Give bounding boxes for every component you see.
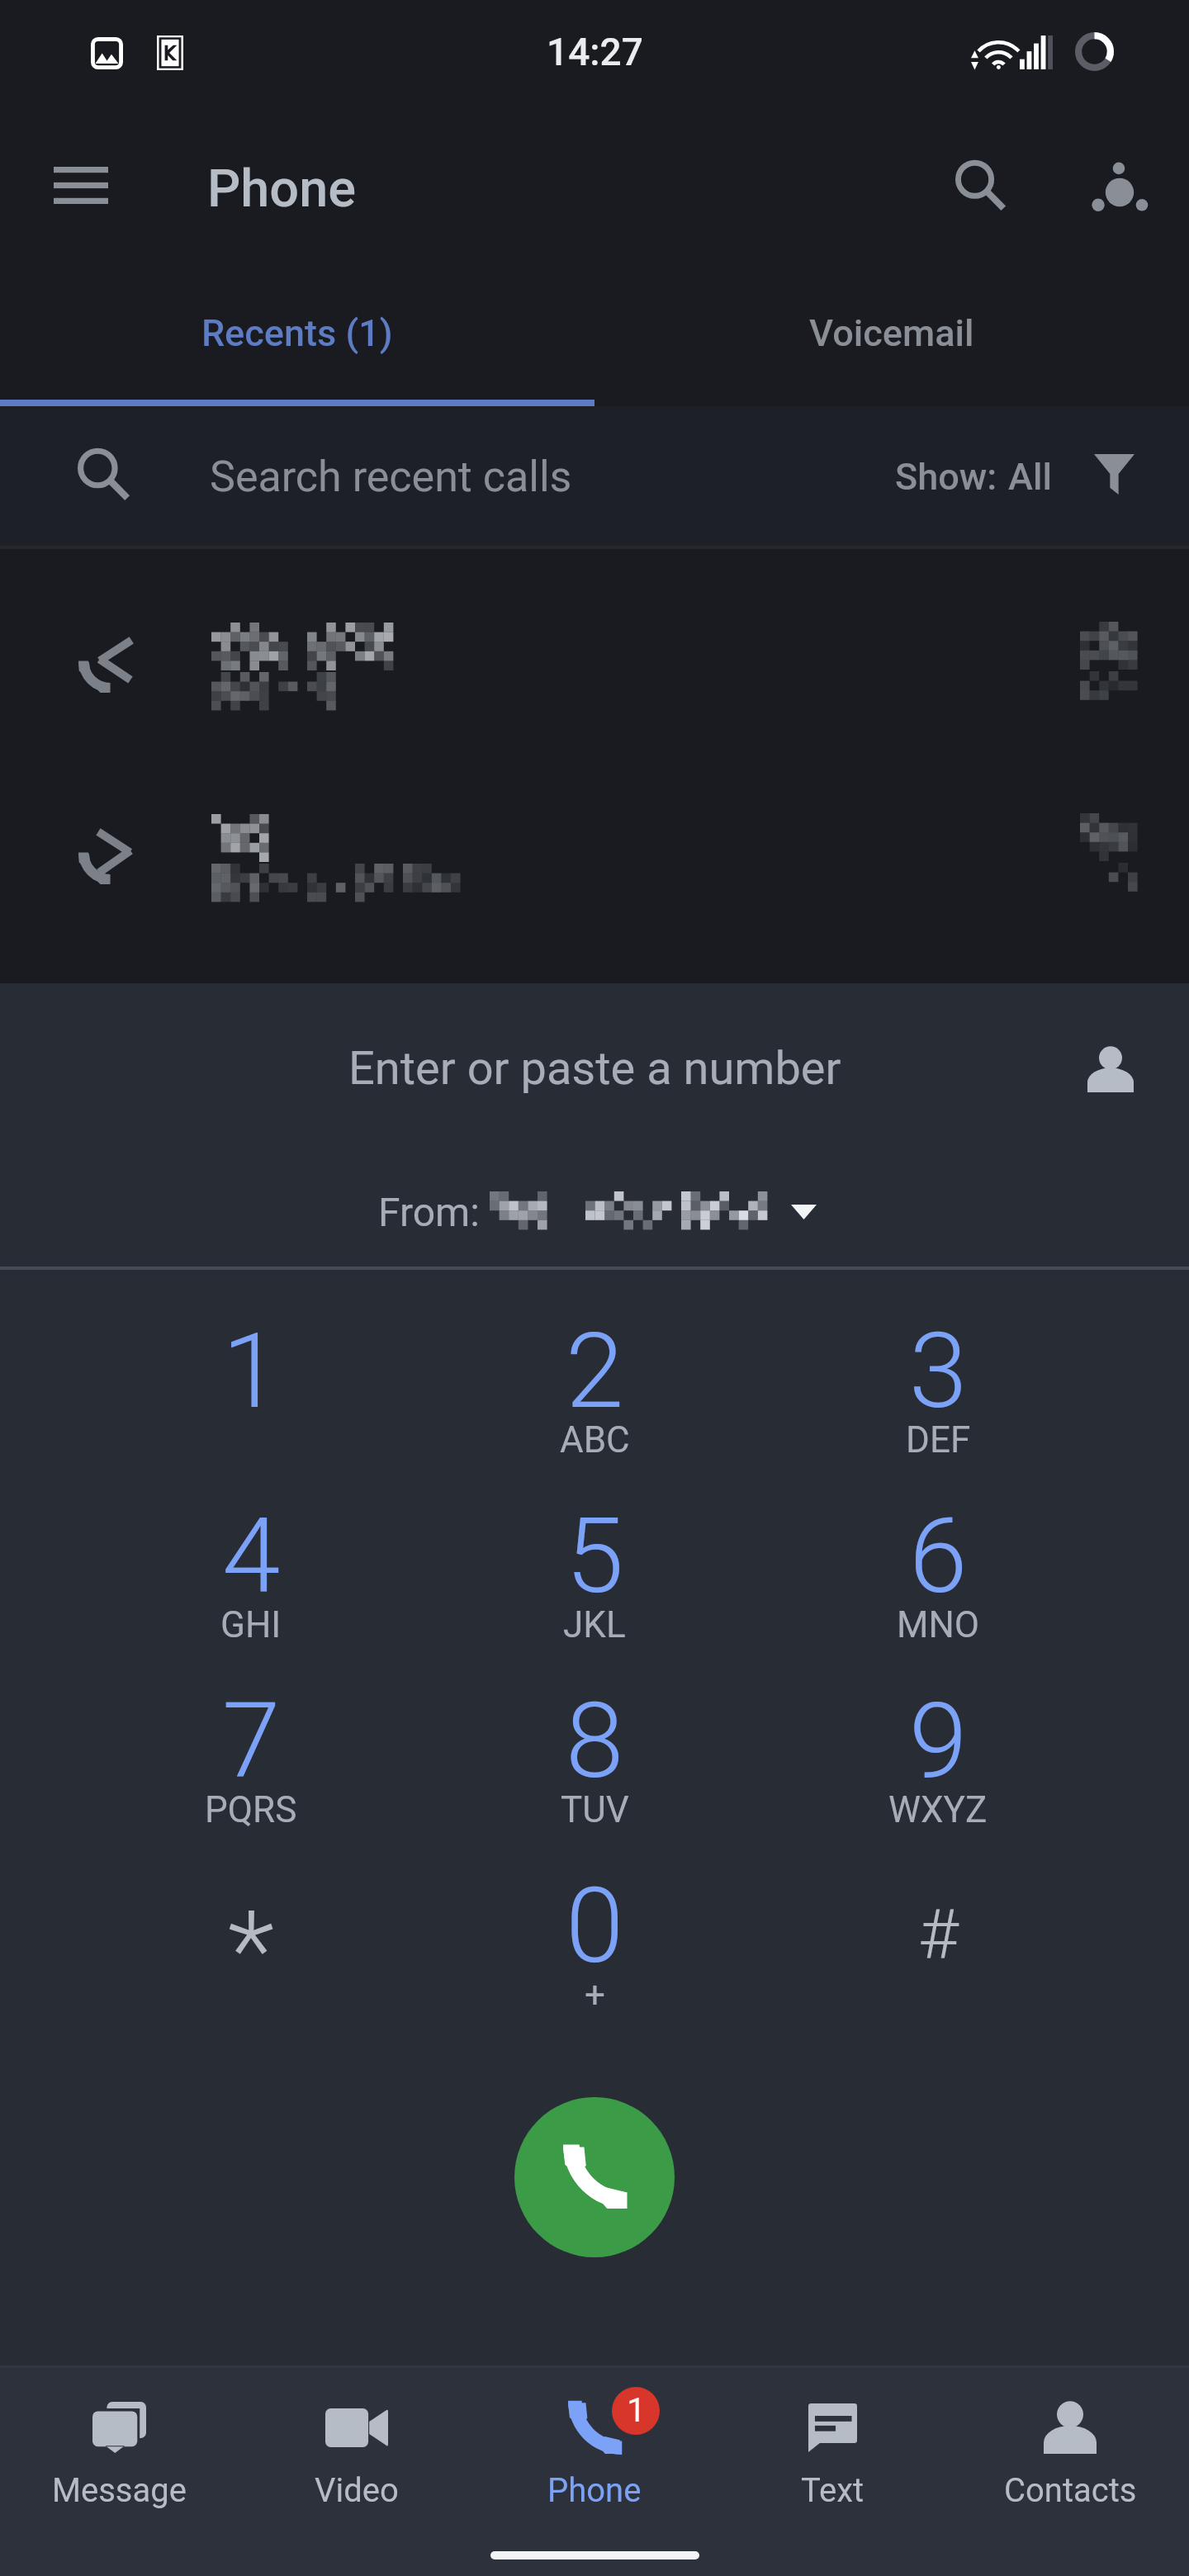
staticText: DEF	[906, 1418, 971, 1461]
button[interactable]: 6	[766, 1461, 1110, 1646]
button[interactable]: Recents (1)	[0, 269, 594, 406]
staticText: 4	[222, 1494, 281, 1617]
staticText: *	[228, 1887, 275, 2015]
staticText: Contacts	[1004, 2471, 1137, 2510]
staticText: Enter or paste a number	[348, 1041, 841, 1096]
button[interactable]: 8	[423, 1646, 766, 1831]
button[interactable]: Voicemail	[594, 269, 1189, 406]
staticText: Recents (1)	[201, 311, 393, 355]
staticText: 3	[909, 1309, 968, 1432]
button[interactable]: 7	[79, 1646, 423, 1831]
button[interactable]: From:	[0, 1148, 1189, 1267]
staticText: Show:	[895, 455, 997, 499]
staticText: Voicemail	[809, 311, 974, 355]
button[interactable]: Text	[713, 2368, 951, 2530]
staticText: Phone	[207, 159, 356, 220]
staticText: Message	[52, 2471, 187, 2510]
button[interactable]: 5	[423, 1461, 766, 1646]
staticText: TUV	[561, 1788, 629, 1831]
button[interactable]: 0	[423, 1831, 766, 2016]
staticText: 14:27	[547, 30, 643, 74]
staticText: MNO	[897, 1603, 980, 1646]
button[interactable]: 4	[79, 1461, 423, 1646]
staticText: +	[585, 1973, 605, 2016]
staticText: 0	[566, 1864, 624, 1987]
button[interactable]: Choose a contact	[1069, 1028, 1152, 1110]
staticText: 7	[222, 1679, 281, 1802]
button[interactable]: 1	[476, 2368, 713, 2530]
staticText: ABC	[560, 1418, 630, 1461]
staticText: Search recent calls	[210, 452, 572, 502]
staticText: From:	[378, 1189, 480, 1235]
staticText: 9	[909, 1679, 968, 1802]
staticText: JKL	[563, 1603, 626, 1646]
button[interactable]: *	[79, 1831, 423, 2016]
staticText: #	[918, 1894, 959, 1975]
staticText: 2	[566, 1309, 624, 1432]
button[interactable]: 1	[79, 1276, 423, 1461]
button[interactable]: Search recent calls	[0, 406, 1189, 546]
staticText: Video	[315, 2471, 399, 2510]
button[interactable]: 2	[423, 1276, 766, 1461]
button[interactable]	[0, 761, 1189, 953]
staticText: GHI	[220, 1603, 282, 1646]
staticText: 1	[222, 1309, 281, 1432]
button[interactable]: Open navigation menu	[35, 139, 127, 231]
button[interactable]: More options	[1072, 140, 1168, 235]
button[interactable]: Call	[514, 2097, 675, 2257]
staticText: 5	[566, 1494, 624, 1617]
staticText: 8	[566, 1679, 624, 1802]
staticText: Phone	[547, 2471, 642, 2510]
button[interactable]: Message	[0, 2368, 238, 2530]
button[interactable]	[0, 570, 1189, 761]
button[interactable]: Contacts	[951, 2368, 1189, 2530]
staticText: WXYZ	[888, 1788, 988, 1831]
staticText: PQRS	[205, 1788, 297, 1831]
staticText: All	[1008, 455, 1052, 499]
staticText: Text	[801, 2471, 865, 2510]
button[interactable]: 9	[766, 1646, 1110, 1831]
button[interactable]: Video	[238, 2368, 476, 2530]
button[interactable]: 3	[766, 1276, 1110, 1461]
staticText: 1	[627, 2391, 646, 2430]
button[interactable]: Search	[934, 139, 1028, 233]
staticText: 6	[909, 1494, 968, 1617]
button[interactable]: #	[766, 1831, 1110, 2016]
